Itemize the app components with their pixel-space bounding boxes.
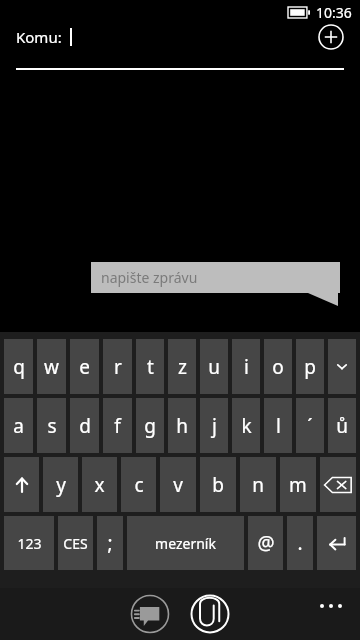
button[interactable]: i	[232, 339, 260, 394]
button[interactable]: s	[37, 398, 66, 453]
staticText: o	[272, 354, 284, 380]
button[interactable]: v	[160, 457, 196, 512]
button[interactable]: p	[296, 339, 324, 394]
button[interactable]	[4, 457, 39, 512]
button[interactable]	[320, 457, 356, 512]
staticText: CES	[63, 534, 88, 553]
button[interactable]: b	[200, 457, 236, 512]
staticText: .	[297, 530, 303, 556]
staticText: p	[304, 354, 316, 380]
staticText: ;	[107, 530, 113, 556]
staticText: v	[173, 472, 183, 498]
staticText: s	[47, 413, 57, 439]
button[interactable]: napište zprávu	[91, 262, 340, 293]
staticText: ´	[307, 413, 313, 439]
button[interactable]	[317, 516, 356, 570]
button[interactable]: ů	[328, 398, 356, 453]
button[interactable]: Add recipient	[318, 24, 344, 50]
button[interactable]: More options	[316, 600, 346, 612]
button[interactable]: ;	[97, 516, 123, 570]
staticText: t	[147, 354, 154, 380]
button[interactable]: c	[121, 457, 156, 512]
staticText: b	[212, 472, 224, 498]
button[interactable]: .	[287, 516, 313, 570]
staticText: e	[79, 354, 90, 380]
staticText: x	[94, 472, 105, 498]
button[interactable]: z	[168, 339, 196, 394]
staticText: g	[144, 413, 156, 439]
button[interactable]: o	[264, 339, 292, 394]
staticText: l	[276, 413, 281, 439]
staticText: m	[289, 472, 307, 498]
button[interactable]: mezerník	[127, 516, 244, 570]
staticText: z	[178, 354, 187, 380]
staticText: 10:36	[316, 3, 352, 22]
button[interactable]: g	[136, 398, 164, 453]
button[interactable]: e	[70, 339, 99, 394]
staticText: r	[114, 354, 122, 380]
button[interactable]: u	[200, 339, 228, 394]
staticText: j	[212, 413, 217, 439]
staticText: i	[244, 354, 249, 380]
staticText: h	[176, 413, 188, 439]
staticText: napište zprávu	[101, 268, 198, 287]
button[interactable]: l	[264, 398, 292, 453]
button[interactable]: n	[240, 457, 276, 512]
button[interactable]: CES	[58, 516, 93, 570]
staticText: c	[134, 472, 144, 498]
staticText: Komu:	[16, 27, 62, 47]
button[interactable]: q	[4, 339, 33, 394]
button[interactable]: 123	[4, 516, 54, 570]
button[interactable]: j	[200, 398, 228, 453]
button[interactable]: d	[70, 398, 99, 453]
button[interactable]: y	[43, 457, 78, 512]
staticText: u	[208, 354, 220, 380]
staticText: f	[114, 413, 121, 439]
staticText: q	[13, 354, 25, 380]
staticText: y	[56, 472, 66, 498]
button[interactable]: ´	[296, 398, 324, 453]
button[interactable]: r	[103, 339, 132, 394]
button[interactable]: @	[248, 516, 283, 570]
button[interactable]: f	[103, 398, 132, 453]
button[interactable]	[328, 339, 356, 394]
button[interactable]: x	[82, 457, 117, 512]
staticText: 123	[17, 534, 42, 553]
staticText: d	[79, 413, 91, 439]
button[interactable]: k	[232, 398, 260, 453]
staticText: @	[257, 530, 275, 556]
button[interactable]: m	[280, 457, 316, 512]
button[interactable]: Attach	[189, 593, 231, 635]
button[interactable]: h	[168, 398, 196, 453]
staticText: a	[13, 413, 24, 439]
staticText: k	[241, 413, 252, 439]
button[interactable]: Send message	[129, 593, 171, 635]
button[interactable]: t	[136, 339, 164, 394]
staticText: n	[252, 472, 264, 498]
button[interactable]: w	[37, 339, 66, 394]
staticText: w	[44, 354, 59, 380]
staticText: mezerník	[155, 534, 216, 553]
staticText: ů	[336, 413, 348, 439]
button[interactable]: a	[4, 398, 33, 453]
